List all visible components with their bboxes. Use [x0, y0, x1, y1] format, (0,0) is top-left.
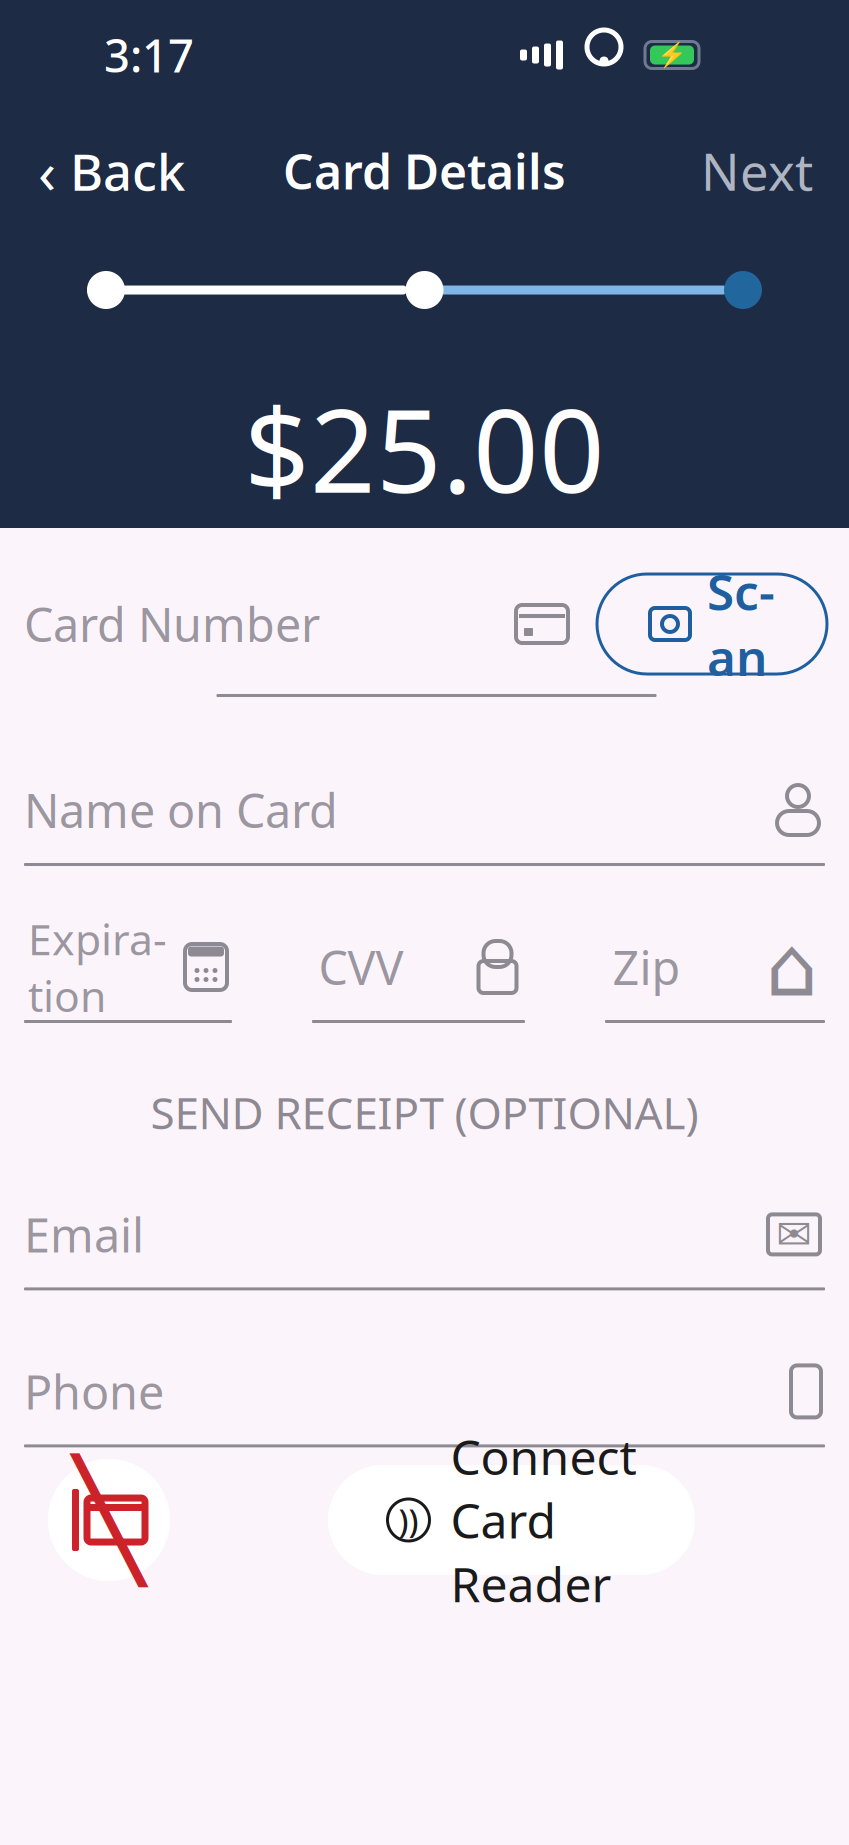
staticText: Next [701, 137, 813, 205]
staticText: )) [398, 1499, 418, 1541]
button[interactable]: Card entry disabled [48, 1459, 170, 1581]
staticText: 3:17 [104, 25, 194, 85]
staticText: Card Details [283, 139, 566, 203]
button[interactable]: ‹ [8, 131, 215, 211]
staticText: Card Number [24, 593, 320, 655]
staticText: $25.00 [244, 372, 605, 524]
staticText: Scan [707, 558, 775, 689]
staticText: SEND RECEIPT (OPTIONAL) [150, 1083, 698, 1141]
staticText: Name on Card [24, 779, 338, 841]
staticText: ⚡ [657, 41, 687, 69]
staticText: ⌂ [765, 920, 817, 1014]
staticText: ‹ [38, 132, 56, 210]
button[interactable]: )) [328, 1465, 695, 1575]
staticText: Connect Card Reader [450, 1424, 636, 1616]
staticText: Expiration [28, 910, 167, 1024]
staticText: Zip [612, 936, 680, 998]
staticText: Back [70, 137, 185, 205]
staticText: Phone [24, 1360, 164, 1422]
staticText: Email [24, 1203, 144, 1265]
button[interactable]: Next [673, 131, 841, 211]
staticText: ╲ [74, 1455, 143, 1585]
staticText: CVV [318, 936, 403, 998]
staticText: ✉ [776, 1210, 812, 1259]
button[interactable]: Scan [597, 574, 827, 674]
